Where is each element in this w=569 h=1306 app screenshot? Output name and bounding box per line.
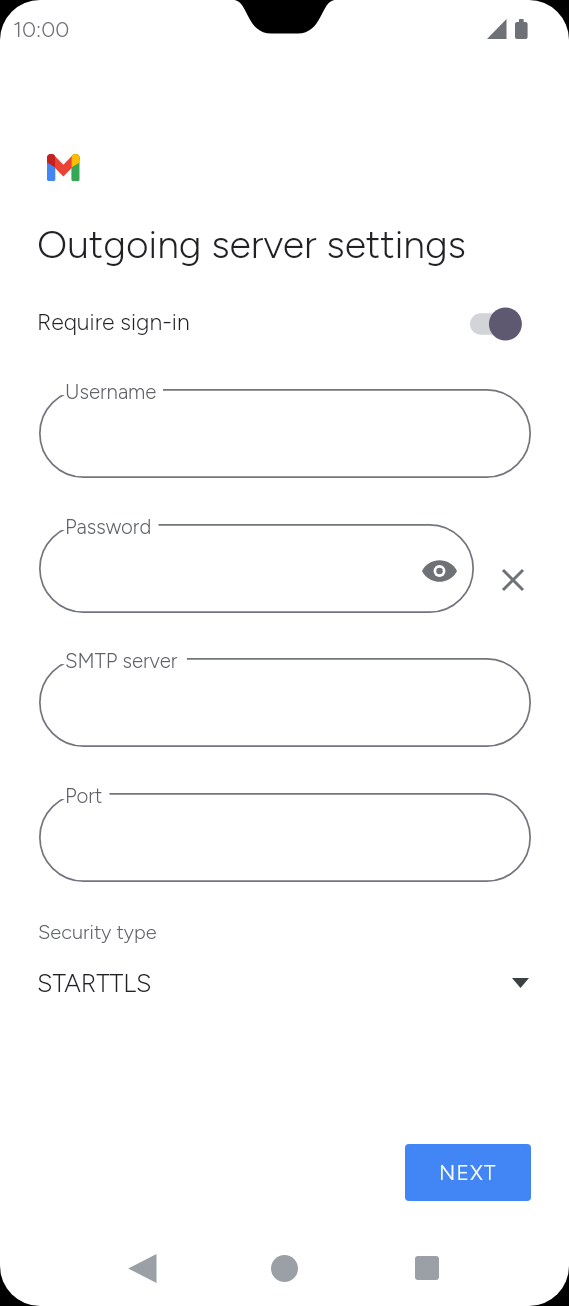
staticText: Security type: [38, 920, 157, 944]
button[interactable]: Back: [112, 1238, 172, 1298]
button[interactable]: Clear: [489, 556, 536, 603]
button[interactable]: [466, 300, 529, 344]
button[interactable]: STARTTLS: [37, 960, 529, 1006]
button[interactable]: Require sign-in: [37, 299, 529, 345]
button[interactable]: Show password: [417, 549, 461, 593]
staticText: Port: [65, 784, 103, 808]
staticText: Require sign-in: [37, 308, 190, 336]
staticText: NEXT: [439, 1160, 497, 1185]
staticText: Password: [65, 515, 152, 539]
staticText: STARTTLS: [37, 968, 152, 998]
button[interactable]: Home: [254, 1238, 314, 1298]
staticText: Outgoing server settings: [37, 221, 466, 268]
button[interactable]: NEXT: [405, 1144, 531, 1201]
staticText: SMTP server: [65, 649, 178, 673]
staticText: Username: [65, 380, 157, 404]
button[interactable]: Recent apps: [397, 1238, 457, 1298]
staticText: 10:00: [13, 16, 70, 42]
